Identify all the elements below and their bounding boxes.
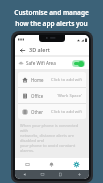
button[interactable]: Add [70, 170, 89, 179]
button[interactable]: Recents [33, 170, 51, 179]
button[interactable]: Home [18, 72, 86, 87]
button[interactable]: Home [51, 170, 70, 179]
button[interactable]: Toggle safe wifi area [72, 60, 85, 67]
staticText: networks, distance alerts are disabled a… [20, 133, 84, 143]
staticText: Click to add wifi [51, 109, 82, 115]
button[interactable]: Settings [64, 158, 89, 170]
staticText: how the app alerts you [15, 19, 88, 28]
button[interactable]: Other [18, 104, 86, 119]
staticText: 'Work Space' [57, 93, 82, 99]
staticText: Office [31, 93, 44, 99]
staticText: Home [31, 77, 44, 83]
staticText: Safe Wifi Area [26, 60, 56, 66]
staticText: Other [31, 109, 44, 115]
staticText: 3D alert [29, 46, 50, 53]
button[interactable]: Back [18, 46, 26, 54]
staticText: Customise and manage [14, 8, 89, 17]
staticText: When your phone is connected with [20, 123, 84, 133]
staticText: your phone to avoid constant alarms. [20, 143, 84, 153]
button[interactable]: Office [18, 88, 86, 103]
staticText: Click to add wifi [51, 77, 82, 83]
button[interactable]: Alerts [39, 158, 64, 170]
button[interactable]: Devices [15, 158, 39, 170]
button[interactable]: Back [15, 170, 33, 179]
button[interactable]: Safe Wifi Area [15, 57, 89, 69]
